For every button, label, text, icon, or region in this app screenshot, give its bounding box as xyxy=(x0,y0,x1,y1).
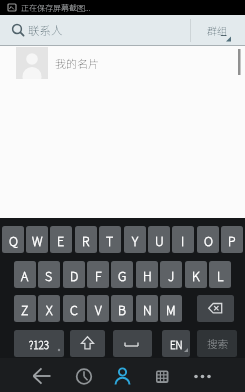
button[interactable]: B xyxy=(111,295,133,322)
button[interactable]: T xyxy=(99,226,121,253)
staticText: V xyxy=(95,300,102,318)
staticText: X xyxy=(46,300,53,318)
button[interactable]: M xyxy=(160,295,182,322)
button[interactable]: R xyxy=(75,226,97,253)
staticText: T xyxy=(106,231,114,249)
staticText: N xyxy=(143,300,152,318)
staticText: 群组 xyxy=(207,23,227,37)
button[interactable] xyxy=(63,358,103,392)
button[interactable] xyxy=(103,358,143,392)
staticText: M xyxy=(166,300,176,318)
staticText: 联系人 xyxy=(28,22,63,38)
button[interactable]: G xyxy=(111,261,133,288)
button[interactable]: P xyxy=(221,226,243,253)
button[interactable]: Z xyxy=(14,295,36,322)
button[interactable] xyxy=(143,358,183,392)
staticText: S xyxy=(45,266,53,284)
staticText: E xyxy=(57,231,65,249)
staticText: J xyxy=(168,266,175,284)
button[interactable] xyxy=(23,358,63,392)
staticText: R xyxy=(82,231,90,249)
staticText: H xyxy=(143,266,152,284)
button[interactable]: H xyxy=(136,261,158,288)
staticText: W xyxy=(32,231,43,249)
button[interactable]: C xyxy=(63,295,85,322)
button[interactable]: E xyxy=(50,226,72,253)
staticText: 搜索 xyxy=(207,336,228,351)
staticText: O xyxy=(204,231,213,249)
button[interactable] xyxy=(183,358,223,392)
staticText: U xyxy=(155,231,164,249)
staticText: Z xyxy=(21,300,29,318)
staticText: D xyxy=(70,266,79,284)
button[interactable]: S xyxy=(38,261,60,288)
button[interactable] xyxy=(197,295,234,322)
button[interactable]: L xyxy=(209,261,231,288)
staticText: C xyxy=(70,300,78,318)
staticText: 正在保存屏幕截图... xyxy=(21,2,91,13)
button[interactable]: N xyxy=(136,295,158,322)
staticText: G xyxy=(118,266,127,284)
button[interactable]: A xyxy=(14,261,36,288)
staticText: ?123 xyxy=(29,337,49,351)
button[interactable]: W xyxy=(26,226,48,253)
button[interactable]: Y xyxy=(124,226,146,253)
button[interactable]: X xyxy=(38,295,60,322)
staticText: L xyxy=(217,266,224,284)
button[interactable]: EN xyxy=(162,330,190,357)
staticText: 我的名片 xyxy=(55,55,99,71)
button[interactable]: U xyxy=(148,226,170,253)
button[interactable] xyxy=(0,46,245,84)
button[interactable]: O xyxy=(197,226,219,253)
button[interactable]: ?123 xyxy=(14,330,64,357)
button[interactable] xyxy=(70,330,105,357)
staticText: I xyxy=(181,231,185,249)
button[interactable] xyxy=(0,15,245,46)
staticText: A xyxy=(21,266,29,284)
staticText: F xyxy=(95,266,102,284)
button[interactable]: F xyxy=(87,261,109,288)
button[interactable]: J xyxy=(160,261,182,288)
staticText: K xyxy=(192,266,200,284)
button[interactable]: 搜索 xyxy=(197,330,237,357)
button[interactable]: D xyxy=(63,261,85,288)
staticText: P xyxy=(228,231,236,249)
button[interactable]: Q xyxy=(2,226,24,253)
button[interactable] xyxy=(113,330,152,357)
staticText: Q xyxy=(9,231,18,249)
staticText: Y xyxy=(132,231,139,249)
staticText: B xyxy=(118,300,126,318)
button[interactable] xyxy=(196,15,245,46)
button[interactable]: K xyxy=(185,261,207,288)
button[interactable]: V xyxy=(87,295,109,322)
staticText: EN xyxy=(170,337,183,351)
button[interactable]: I xyxy=(172,226,194,253)
